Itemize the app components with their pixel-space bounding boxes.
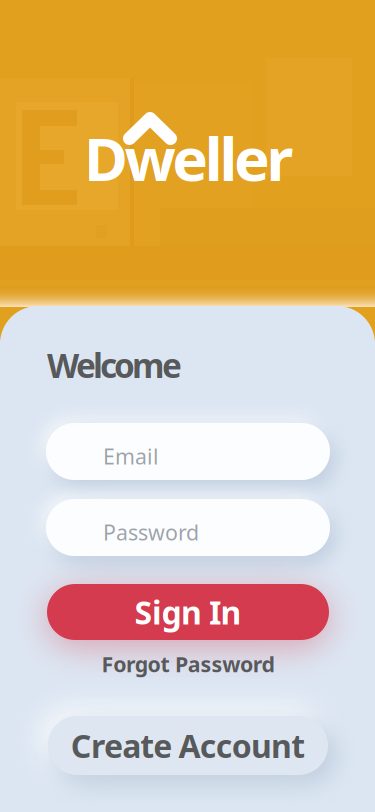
staticText: Forgot Password [101,650,275,678]
button[interactable]: Forgot Password [47,653,329,675]
staticText: Create Account [71,724,305,767]
staticText: Email [103,442,159,470]
button[interactable]: Create Account [48,716,328,775]
staticText: Welcome [47,343,182,387]
staticText: Password [103,518,199,546]
staticText: Sign In [134,591,241,633]
button[interactable]: Sign In [47,584,329,640]
staticText: Dweller [84,118,294,198]
